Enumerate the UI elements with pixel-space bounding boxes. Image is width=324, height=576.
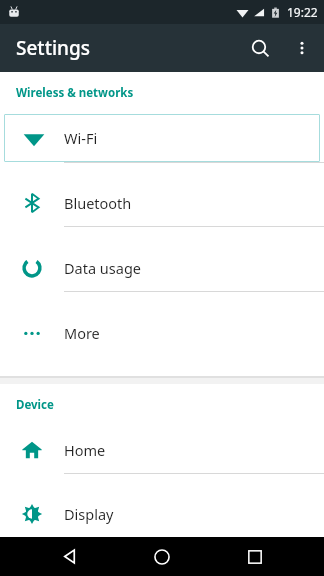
staticText: Wireless & networks <box>16 85 134 101</box>
staticText: Bluetooth <box>64 193 132 213</box>
staticText: Display <box>64 504 114 524</box>
button[interactable]: Wi-Fi <box>4 114 320 162</box>
staticText: Data usage <box>64 258 141 278</box>
staticText: Wi-Fi <box>64 128 98 148</box>
button[interactable]: Home <box>0 426 324 473</box>
staticText: 19:22 <box>287 4 318 20</box>
button[interactable]: Bluetooth <box>0 179 324 226</box>
button[interactable]: Home <box>138 537 186 576</box>
staticText: Settings <box>16 35 90 61</box>
button[interactable]: More options <box>282 28 322 68</box>
staticText: More <box>64 323 100 343</box>
button[interactable]: Data usage <box>0 244 324 291</box>
button[interactable]: Search <box>238 26 282 70</box>
staticText: Home <box>64 440 106 460</box>
button[interactable]: Recent apps <box>231 537 279 576</box>
button[interactable]: Back <box>45 537 93 576</box>
button[interactable]: Display <box>0 491 324 537</box>
button[interactable]: More <box>0 309 324 356</box>
staticText: Device <box>16 397 54 413</box>
